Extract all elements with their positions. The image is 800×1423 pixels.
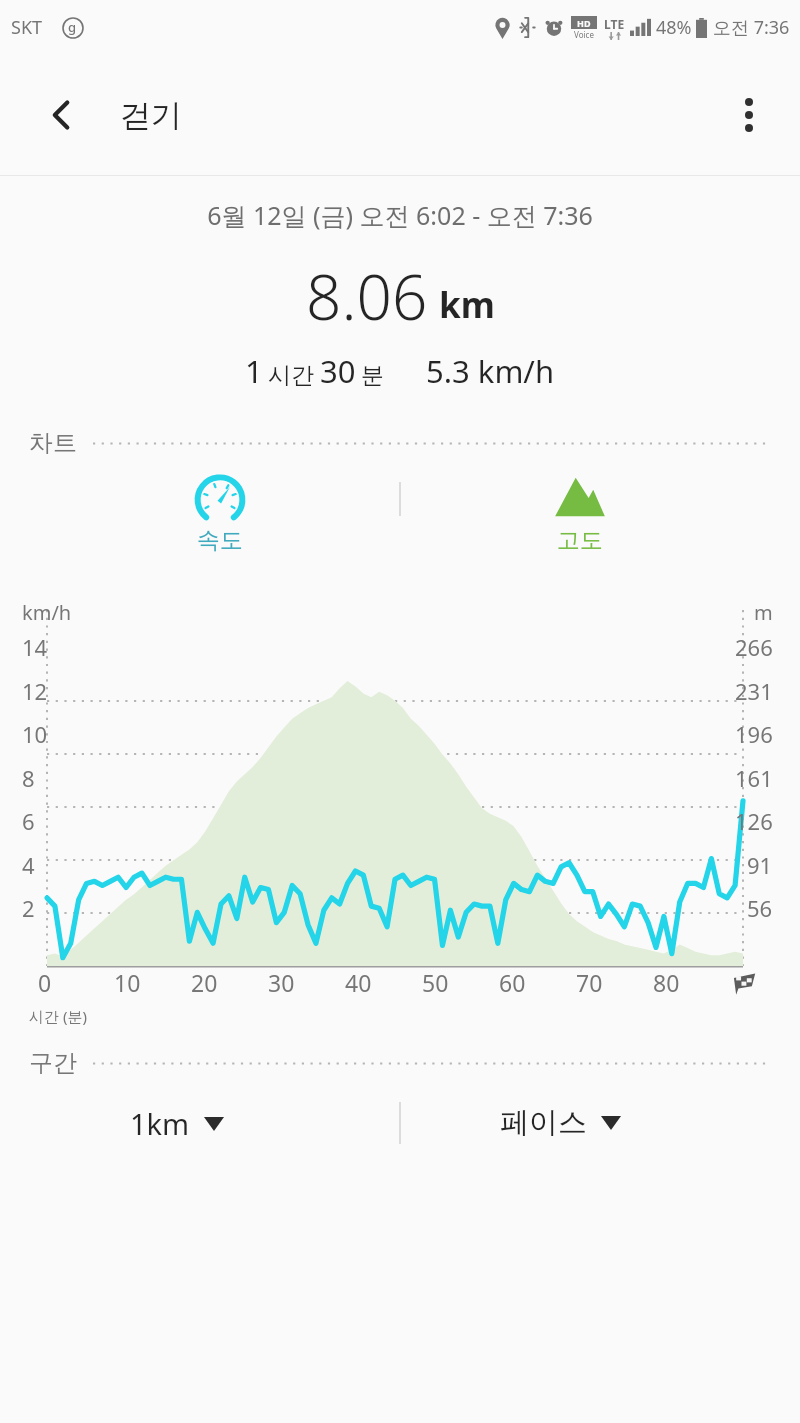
- staticText: 80: [653, 967, 680, 998]
- staticText: 차트: [29, 428, 77, 458]
- staticText: HD: [577, 17, 591, 29]
- staticText: km/h: [22, 599, 72, 626]
- staticText: 2: [22, 893, 35, 923]
- staticText: 속도: [197, 526, 243, 555]
- staticText: g: [68, 18, 77, 36]
- button[interactable]: 속도: [160, 474, 280, 555]
- staticText: 8: [22, 763, 35, 793]
- staticText: 126: [735, 806, 773, 836]
- staticText: 30: [320, 350, 356, 392]
- staticText: SKT: [11, 15, 43, 40]
- staticText: 14: [22, 632, 48, 662]
- staticText: 6월 12일 (금) 오전 6:02 - 오전 7:36: [0, 198, 800, 232]
- staticText: 60: [499, 967, 526, 998]
- button[interactable]: 페이스: [500, 1104, 621, 1141]
- button[interactable]: Back: [34, 89, 86, 141]
- staticText: 걷기: [120, 96, 182, 135]
- staticText: 오전 7:36: [713, 15, 790, 40]
- staticText: Voice: [574, 29, 594, 40]
- staticText: 40: [345, 967, 372, 998]
- staticText: 1km: [130, 1104, 190, 1143]
- staticText: 196: [735, 719, 773, 749]
- staticText: 50: [422, 967, 449, 998]
- staticText: m: [754, 599, 773, 626]
- staticText: 4: [22, 850, 35, 880]
- staticText: 10: [22, 719, 48, 749]
- staticText: 12: [22, 676, 48, 706]
- staticText: 1: [245, 350, 263, 392]
- staticText: 분: [361, 361, 384, 390]
- staticText: 161: [735, 763, 773, 793]
- staticText: 30: [268, 967, 295, 998]
- staticText: 8.06: [306, 254, 428, 338]
- staticText: 5.3 km/h: [426, 350, 555, 392]
- button[interactable]: 1km: [130, 1104, 224, 1143]
- staticText: 페이스: [500, 1104, 587, 1141]
- button[interactable]: More options: [722, 88, 776, 142]
- staticText: 231: [735, 676, 773, 706]
- staticText: 고도: [557, 526, 603, 555]
- staticText: 6: [22, 806, 35, 836]
- staticText: 266: [735, 632, 773, 662]
- staticText: 48%: [656, 15, 692, 40]
- staticText: LTE: [604, 16, 625, 32]
- staticText: 시간 (분): [29, 1006, 87, 1026]
- staticText: 20: [191, 967, 218, 998]
- staticText: 56: [747, 893, 773, 923]
- staticText: 91: [747, 850, 773, 880]
- staticText: 10: [114, 967, 141, 998]
- staticText: 70: [576, 967, 603, 998]
- button[interactable]: 고도: [520, 474, 640, 555]
- staticText: 0: [38, 967, 52, 998]
- staticText: km: [439, 281, 495, 329]
- staticText: 구간: [29, 1048, 77, 1078]
- staticText: 시간: [268, 361, 314, 390]
